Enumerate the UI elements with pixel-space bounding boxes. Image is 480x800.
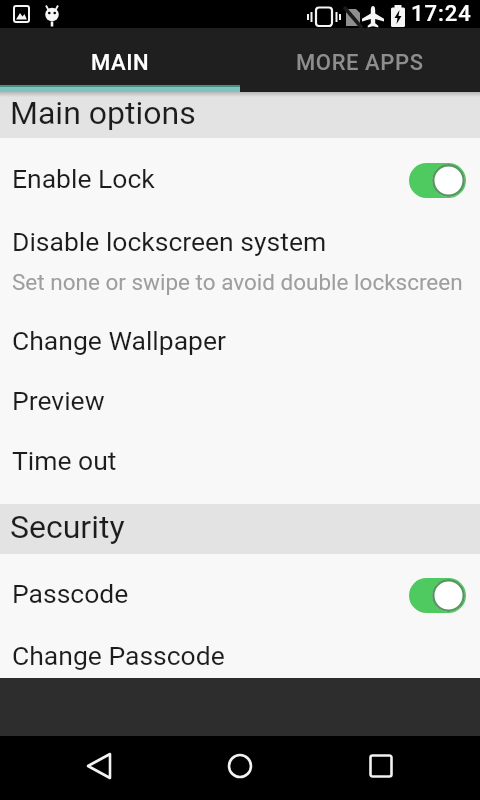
staticText: Time out	[12, 445, 117, 476]
staticText: 17:24	[411, 1, 472, 27]
staticText: Change Passcode	[12, 640, 225, 671]
staticText: Disable lockscreen system	[12, 226, 327, 257]
staticText: Passcode	[12, 578, 129, 609]
button[interactable]: Preview	[0, 372, 480, 432]
staticText: Change Wallpaper	[12, 325, 226, 356]
button[interactable]: Passcode	[0, 554, 480, 636]
button[interactable]: MAIN	[0, 28, 240, 92]
staticText: Set none or swipe to avoid double locksc…	[12, 269, 463, 295]
staticText: Enable Lock	[12, 163, 155, 194]
button[interactable]: Disable lockscreen system	[0, 222, 480, 312]
button[interactable]	[0, 736, 160, 800]
button[interactable]: Change Wallpaper	[0, 312, 480, 372]
button[interactable]: Time out	[0, 432, 480, 492]
button[interactable]	[320, 736, 480, 800]
button[interactable]: MORE APPS	[240, 28, 480, 92]
staticText: MORE APPS	[296, 50, 424, 76]
staticText: Main options	[10, 94, 196, 132]
button[interactable]: Enable Lock	[0, 138, 480, 222]
staticText: Preview	[12, 385, 105, 416]
button[interactable]	[160, 736, 320, 800]
button[interactable]: Change Passcode	[0, 636, 480, 678]
staticText: MAIN	[91, 50, 150, 76]
staticText: Security	[10, 508, 125, 546]
